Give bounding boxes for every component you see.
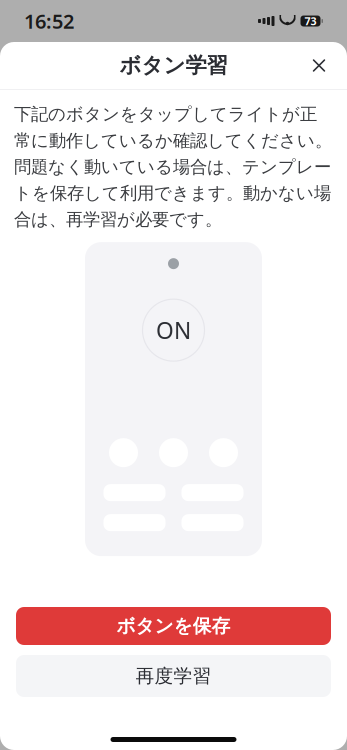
staticText: 16:52	[24, 8, 74, 34]
staticText: ボタン学習	[119, 52, 227, 79]
button[interactable]: ボタンを保存	[16, 607, 331, 645]
staticText: 73	[304, 14, 316, 28]
button[interactable]: ON	[142, 299, 204, 361]
staticText: 再度学習	[135, 664, 211, 687]
button[interactable]: 閉じる	[297, 43, 341, 87]
staticText: ボタンを保存	[116, 614, 230, 637]
staticText: 下記のボタンをタップしてライトが正常に動作しているか確認してください。問題なく動…	[14, 104, 332, 230]
button[interactable]: 再度学習	[16, 655, 331, 697]
staticText: ON	[156, 315, 191, 345]
